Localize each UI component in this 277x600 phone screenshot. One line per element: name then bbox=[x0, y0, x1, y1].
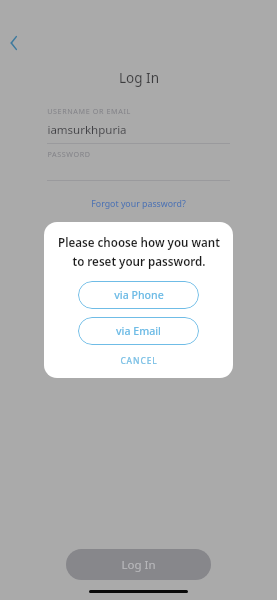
staticText: Forgot your password? bbox=[91, 198, 186, 210]
button[interactable]: via Email bbox=[78, 317, 199, 345]
staticText: USERNAME OR EMAIL bbox=[47, 106, 131, 116]
button[interactable]: Back bbox=[2, 31, 26, 55]
staticText: Log In bbox=[121, 557, 156, 573]
button[interactable]: Log In bbox=[66, 549, 211, 580]
staticText: iamsurkhpuria bbox=[47, 122, 127, 138]
staticText: Log In bbox=[119, 69, 159, 87]
staticText: via Email bbox=[116, 324, 161, 338]
button[interactable]: Forgot your password? bbox=[85, 196, 192, 212]
staticText: CANCEL bbox=[120, 355, 158, 366]
staticText: to reset your password. bbox=[72, 254, 206, 270]
button[interactable]: via Phone bbox=[78, 281, 199, 309]
staticText: Please choose how you want bbox=[58, 235, 220, 251]
staticText: PASSWORD bbox=[47, 149, 91, 159]
button[interactable]: CANCEL bbox=[110, 352, 168, 369]
staticText: via Phone bbox=[114, 288, 164, 302]
